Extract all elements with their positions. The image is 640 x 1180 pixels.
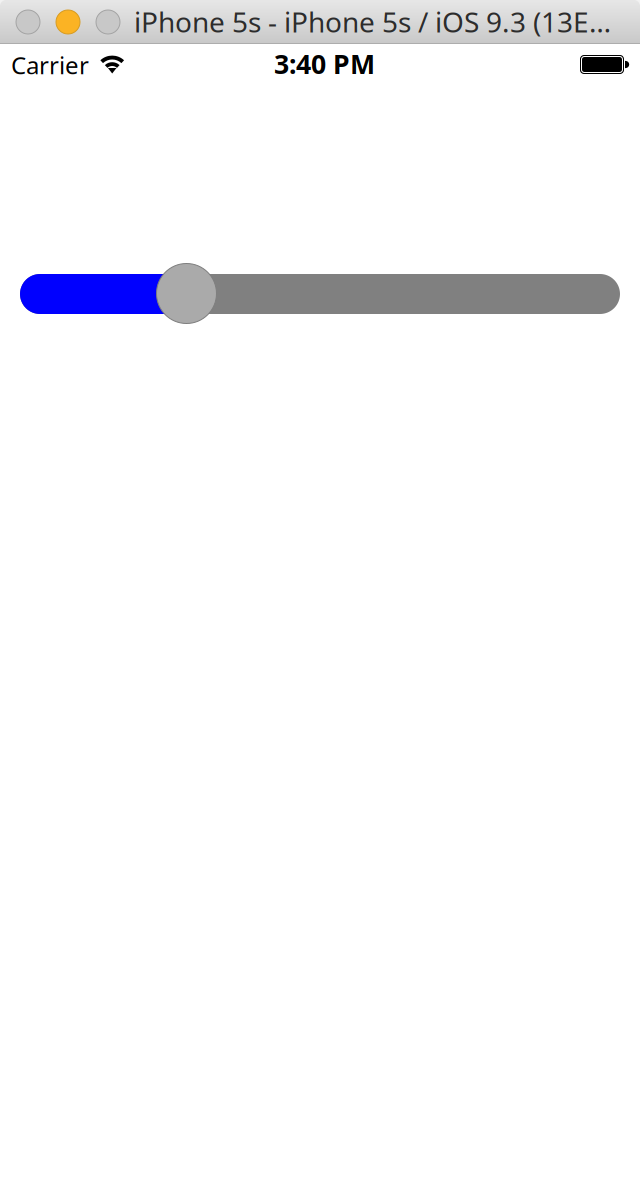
staticText: 3:40 PM	[274, 46, 375, 81]
button[interactable]: Close	[16, 10, 40, 34]
button[interactable]: Zoom	[96, 10, 120, 34]
button[interactable]: Slider	[20, 264, 620, 324]
button[interactable]: Minimize	[56, 10, 80, 34]
staticText: Carrier	[11, 49, 89, 81]
staticText: iPhone 5s - iPhone 5s / iOS 9.3 (13E…	[134, 3, 611, 40]
